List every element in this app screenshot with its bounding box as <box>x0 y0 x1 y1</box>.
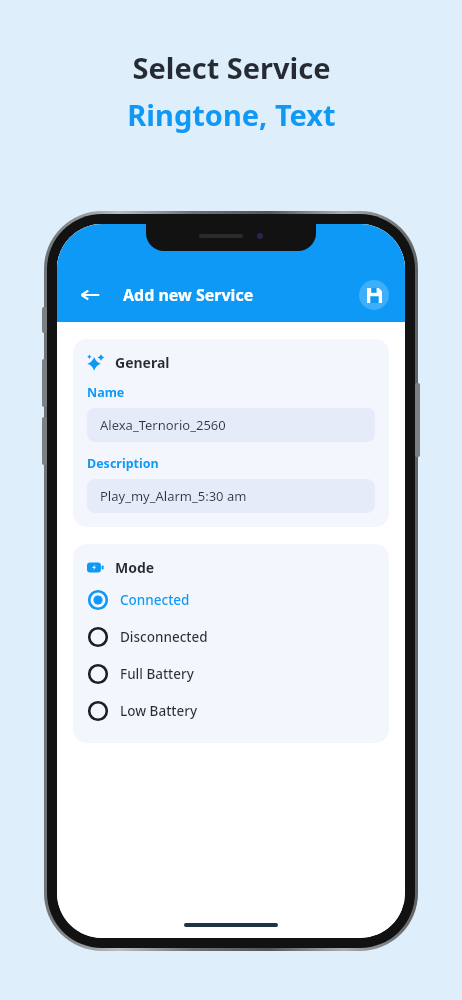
staticText: Ringtone, Text <box>127 95 336 134</box>
staticText: General <box>115 353 170 372</box>
button[interactable]: Play_my_Alarm_5:30 am <box>87 479 375 513</box>
button[interactable]: Alexa_Ternorio_2560 <box>87 408 375 442</box>
staticText: Add new Service <box>123 284 254 306</box>
button[interactable]: Low Battery <box>87 692 375 729</box>
staticText: Low Battery <box>120 702 198 720</box>
staticText: Disconnected <box>120 628 208 646</box>
button[interactable]: Connected <box>87 581 375 618</box>
staticText: Name <box>87 384 125 401</box>
button[interactable]: Save <box>359 280 389 310</box>
staticText: Connected <box>120 591 190 609</box>
staticText: Play_my_Alarm_5:30 am <box>100 487 247 505</box>
button[interactable]: Back <box>73 278 107 312</box>
staticText: Description <box>87 455 159 472</box>
staticText: Mode <box>115 558 155 577</box>
staticText: Select Service <box>132 48 331 87</box>
button[interactable]: Full Battery <box>87 655 375 692</box>
staticText: Alexa_Ternorio_2560 <box>100 416 226 434</box>
staticText: Full Battery <box>120 665 194 683</box>
button[interactable]: Disconnected <box>87 618 375 655</box>
